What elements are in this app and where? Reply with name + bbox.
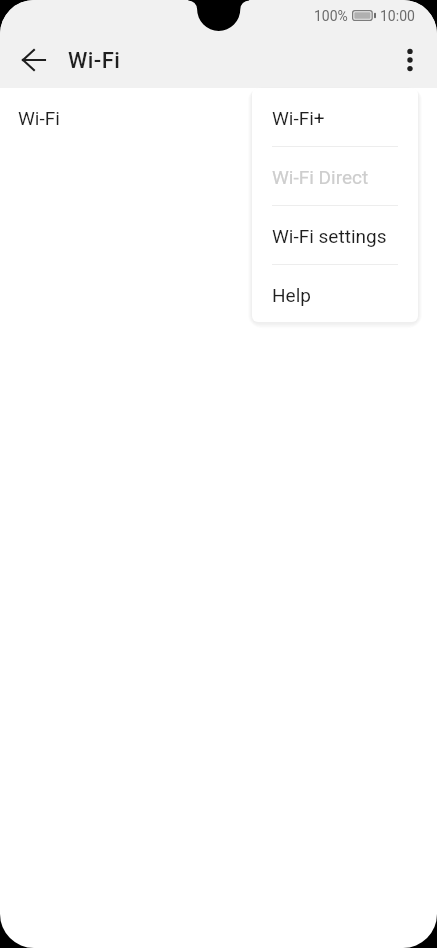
- button[interactable]: Wi-Fi+: [252, 88, 418, 146]
- staticText: Wi-Fi+: [272, 107, 325, 129]
- staticText: 100%: [314, 8, 348, 24]
- button[interactable]: Help: [252, 265, 418, 322]
- staticText: Wi-Fi: [68, 48, 121, 74]
- button[interactable]: Back: [9, 36, 57, 84]
- staticText: Wi-Fi Direct: [272, 166, 369, 188]
- button[interactable]: More options: [386, 36, 434, 84]
- staticText: 10:00: [380, 8, 415, 24]
- staticText: Help: [272, 284, 311, 306]
- staticText: Wi-Fi: [18, 107, 60, 129]
- button[interactable]: Wi-Fi Direct: [252, 147, 418, 205]
- staticText: Wi-Fi settings: [272, 225, 387, 247]
- button[interactable]: Wi-Fi settings: [252, 206, 418, 264]
